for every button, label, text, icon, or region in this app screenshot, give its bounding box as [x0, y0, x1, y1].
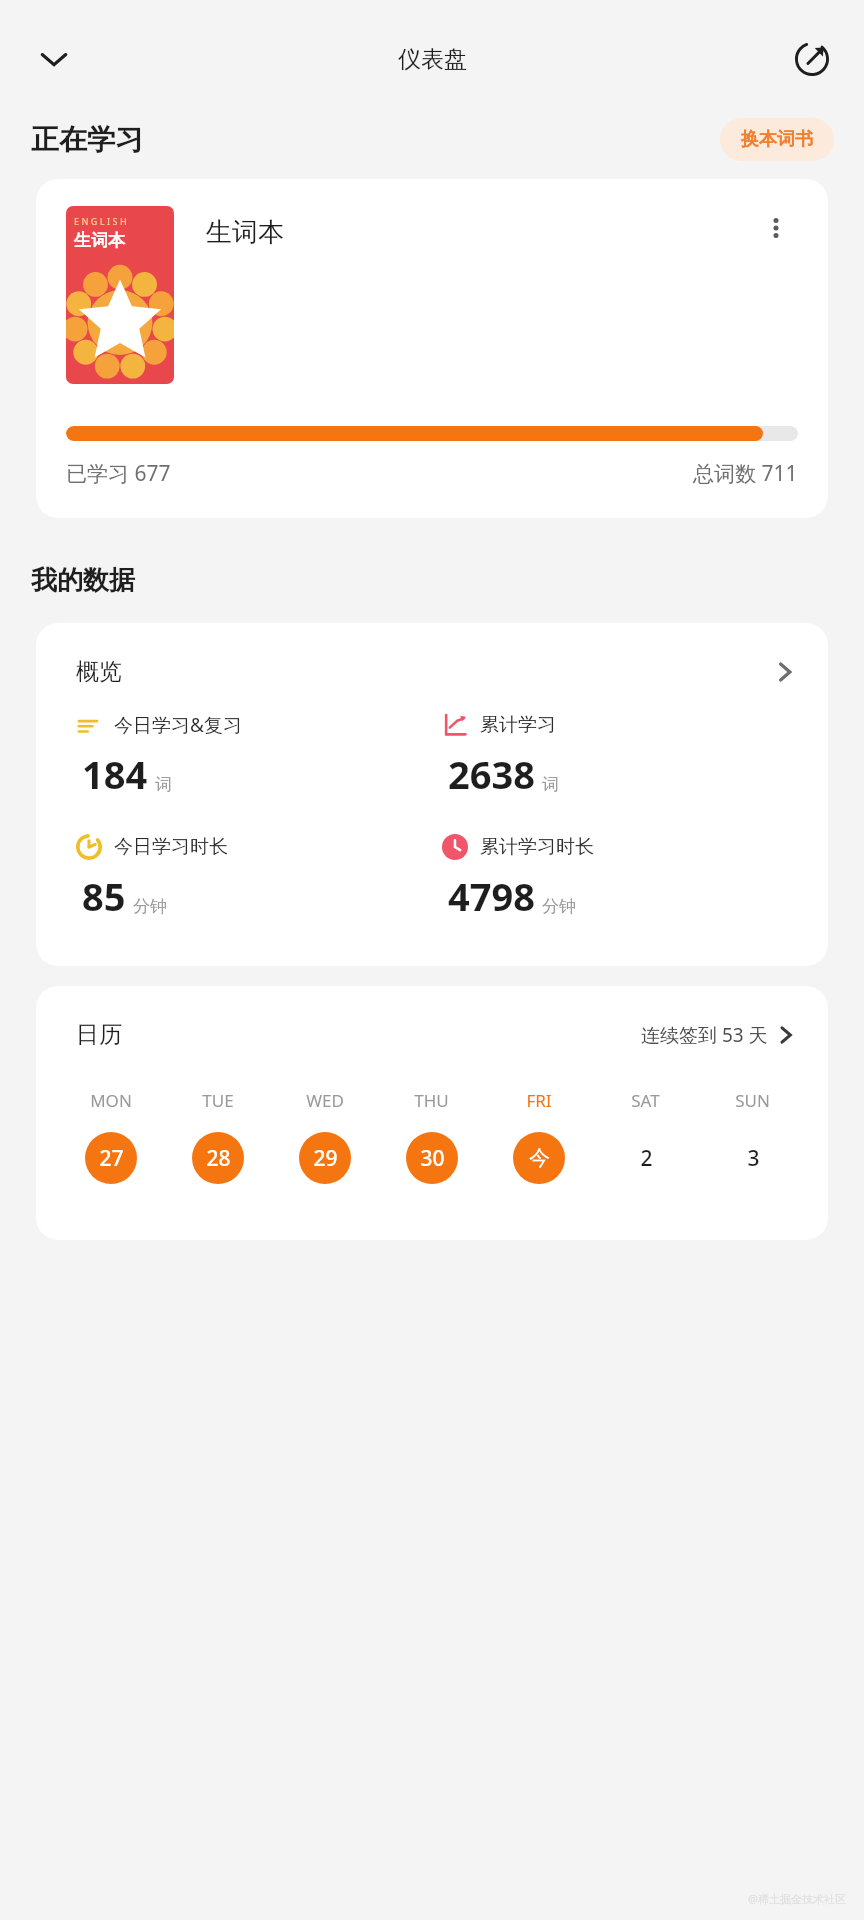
staticText: 今日学习&复习	[114, 712, 242, 738]
staticText: TUE	[202, 1089, 234, 1112]
button[interactable]: 日历	[36, 986, 828, 1049]
staticText: 28	[206, 1144, 231, 1173]
staticText: 3	[747, 1144, 760, 1173]
staticText: SUN	[735, 1089, 770, 1112]
staticText: FRI	[526, 1089, 552, 1112]
staticText: WED	[306, 1089, 344, 1112]
button[interactable]: ENGLISH	[36, 179, 828, 518]
button[interactable]: 2	[620, 1132, 672, 1184]
staticText: 累计学习	[480, 713, 556, 737]
button[interactable]: Share	[784, 31, 840, 87]
staticText: THU	[414, 1089, 449, 1112]
staticText: 总词数 711	[693, 459, 798, 488]
button[interactable]: 30	[406, 1132, 458, 1184]
staticText: 仪表盘	[398, 45, 467, 74]
button[interactable]: 28	[192, 1132, 244, 1184]
staticText: MON	[90, 1089, 132, 1112]
staticText: 今日学习时长	[114, 835, 228, 859]
button[interactable]: Collapse	[26, 31, 82, 87]
button[interactable]: 3	[727, 1132, 779, 1184]
staticText: 分钟	[133, 896, 167, 917]
staticText: 184	[82, 748, 148, 800]
staticText: SAT	[631, 1089, 660, 1112]
staticText: 85	[82, 870, 126, 922]
button[interactable]: 29	[299, 1132, 351, 1184]
staticText: 换本词书	[741, 128, 813, 151]
staticText: @稀土掘金技术社区	[748, 1891, 846, 1906]
staticText: 词	[542, 774, 559, 795]
staticText: 概览	[76, 657, 122, 686]
staticText: 29	[313, 1144, 338, 1173]
staticText: ENGLISH	[74, 215, 130, 227]
staticText: 日历	[76, 1020, 122, 1049]
button[interactable]: More options	[754, 206, 798, 250]
button[interactable]: 27	[85, 1132, 137, 1184]
staticText: 生词本	[206, 216, 284, 249]
staticText: 27	[99, 1144, 124, 1173]
staticText: 今	[529, 1145, 550, 1171]
button[interactable]: 今	[513, 1132, 565, 1184]
staticText: 词	[155, 774, 172, 795]
staticText: 2	[640, 1144, 653, 1173]
staticText: 30	[420, 1144, 445, 1173]
staticText: 分钟	[542, 896, 576, 917]
button[interactable]: 概览	[36, 623, 828, 694]
staticText: 2638	[448, 748, 535, 800]
button[interactable]: 换本词书	[720, 118, 834, 161]
staticText: 4798	[448, 870, 535, 922]
staticText: 生词本	[74, 230, 125, 251]
staticText: 我的数据	[31, 564, 135, 597]
staticText: 正在学习	[31, 122, 143, 157]
staticText: 连续签到 53 天	[641, 1022, 768, 1048]
staticText: 累计学习时长	[480, 835, 594, 859]
staticText: 已学习 677	[66, 459, 171, 488]
